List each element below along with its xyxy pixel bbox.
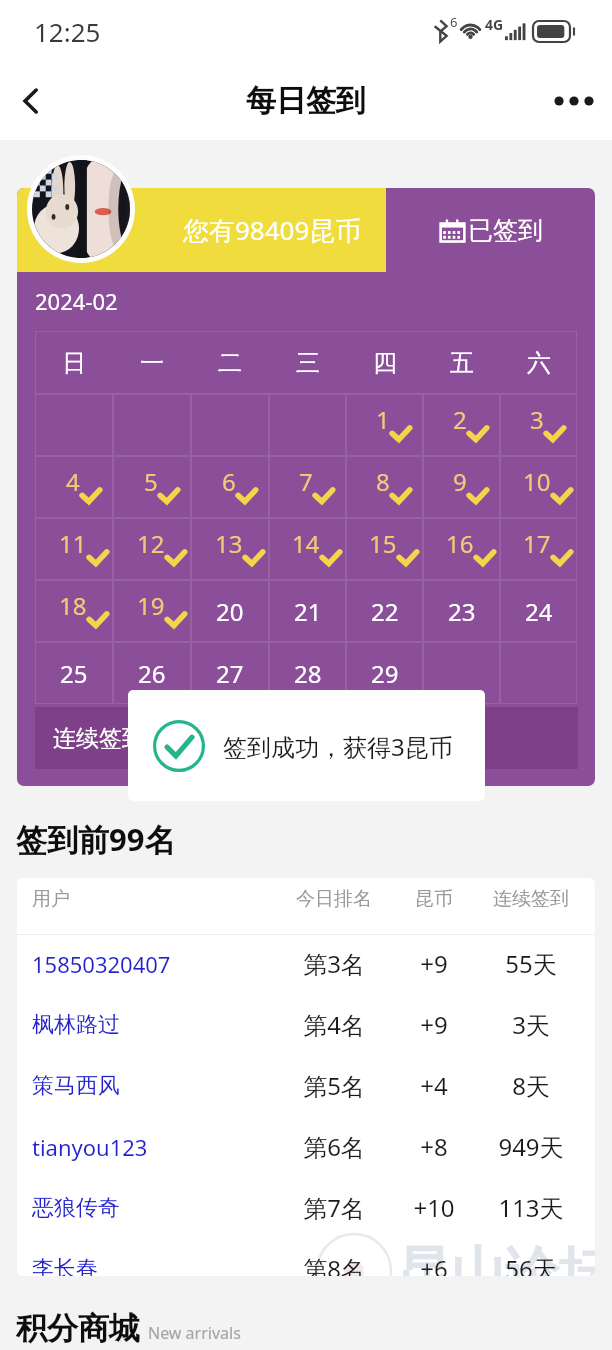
staticText: 15	[369, 527, 397, 560]
staticText: 4G	[485, 15, 504, 34]
staticText: 55天	[475, 947, 587, 980]
staticText: 今日排名	[275, 887, 393, 911]
staticText: 22	[371, 595, 399, 628]
staticText: 26	[138, 657, 166, 690]
staticText: 第8名	[275, 1252, 393, 1276]
staticText: +4	[393, 1069, 475, 1102]
staticText: 连续签到	[475, 887, 587, 911]
staticText: 3	[530, 403, 544, 436]
staticText: 积分商城	[16, 1309, 140, 1348]
staticText: 23	[448, 595, 476, 628]
staticText: +8	[393, 1130, 475, 1163]
button[interactable]: 7	[269, 456, 346, 518]
staticText: 6	[450, 13, 458, 31]
staticText: 日	[62, 348, 86, 378]
button[interactable]: 10	[500, 456, 577, 518]
staticText: 19	[137, 589, 165, 622]
staticText: 5	[144, 465, 158, 498]
staticText: 二	[218, 348, 242, 378]
staticText: +6	[393, 1252, 475, 1276]
button[interactable]: 策马西风	[17, 1055, 595, 1116]
button[interactable]: 15	[346, 518, 423, 580]
staticText: 第7名	[275, 1191, 393, 1224]
button[interactable]: 2	[423, 394, 500, 456]
button[interactable]: 1	[346, 394, 423, 456]
button[interactable]: 12	[113, 518, 191, 580]
button[interactable]: 9	[423, 456, 500, 518]
button[interactable]: 20	[191, 580, 269, 642]
button[interactable]: 8	[346, 456, 423, 518]
staticText: 连续签到	[53, 724, 145, 753]
staticText: 三	[296, 348, 320, 378]
button[interactable]: 恶狼传奇	[17, 1177, 595, 1238]
button[interactable]: 25	[35, 642, 113, 704]
button[interactable]: 21	[269, 580, 346, 642]
staticText: 20	[216, 595, 244, 628]
staticText: 3天	[475, 1008, 587, 1041]
button[interactable]: 15850320407	[17, 933, 595, 994]
staticText: 29	[371, 657, 399, 690]
staticText: 签到前99名	[16, 818, 176, 860]
staticText: 第6名	[275, 1130, 393, 1163]
staticText: 6	[222, 465, 236, 498]
button[interactable]: 13	[191, 518, 269, 580]
button[interactable]: 李长春	[17, 1238, 595, 1276]
button[interactable]: 6	[191, 456, 269, 518]
staticText: 24	[525, 595, 553, 628]
staticText: 12:25	[34, 14, 101, 49]
staticText: 8	[376, 465, 390, 498]
button[interactable]: 27	[191, 642, 269, 704]
staticText: 您有98409昆币	[183, 212, 362, 248]
staticText: 9	[453, 465, 467, 498]
button[interactable]: 24	[500, 580, 577, 642]
staticText: 56天	[475, 1252, 587, 1276]
button[interactable]: 枫林路过	[17, 994, 595, 1055]
button[interactable]: More options	[536, 70, 612, 132]
button[interactable]: Back	[0, 70, 62, 132]
staticText: 13	[215, 527, 243, 560]
staticText: 113天	[475, 1191, 587, 1224]
staticText: 4	[66, 465, 80, 498]
staticText: 枫林路过	[32, 1011, 275, 1039]
staticText: 949天	[475, 1130, 587, 1163]
button[interactable]: 19	[113, 580, 191, 642]
button[interactable]: 28	[269, 642, 346, 704]
button[interactable]: 3	[500, 394, 577, 456]
staticText: 第3名	[275, 947, 393, 980]
button[interactable]: 23	[423, 580, 500, 642]
staticText: 14	[292, 527, 320, 560]
staticText: 12	[137, 527, 165, 560]
staticText: 昆币	[393, 887, 475, 911]
staticText: 2	[453, 403, 467, 436]
button[interactable]: 11	[35, 518, 113, 580]
button[interactable]: 29	[346, 642, 423, 704]
staticText: 昆山论坛	[397, 1239, 595, 1276]
staticText: 恶狼传奇	[32, 1194, 275, 1222]
staticText: 第4名	[275, 1008, 393, 1041]
staticText: 用户	[32, 887, 275, 911]
staticText: 第5名	[275, 1069, 393, 1102]
button[interactable]: tianyou123	[17, 1116, 595, 1177]
button[interactable]: 17	[500, 518, 577, 580]
staticText: 8天	[475, 1069, 587, 1102]
button[interactable]: 连续签到	[35, 707, 578, 769]
button[interactable]: 14	[269, 518, 346, 580]
staticText: 一	[140, 348, 164, 378]
staticText: 28	[294, 657, 322, 690]
button[interactable]: 22	[346, 580, 423, 642]
staticText: New arrivals	[148, 1322, 241, 1344]
staticText: +10	[393, 1191, 475, 1224]
staticText: 27	[216, 657, 244, 690]
staticText: +9	[393, 947, 475, 980]
button[interactable]: 4	[35, 456, 113, 518]
button[interactable]: 16	[423, 518, 500, 580]
button[interactable]: 5	[113, 456, 191, 518]
staticText: 六	[527, 348, 551, 378]
staticText: 10	[523, 465, 551, 498]
staticText: 策马西风	[32, 1072, 275, 1100]
staticText: 五	[450, 348, 474, 378]
button[interactable]: 18	[35, 580, 113, 642]
button[interactable]: 26	[113, 642, 191, 704]
staticText: 18	[59, 589, 87, 622]
button[interactable]: 已签到	[386, 188, 595, 272]
